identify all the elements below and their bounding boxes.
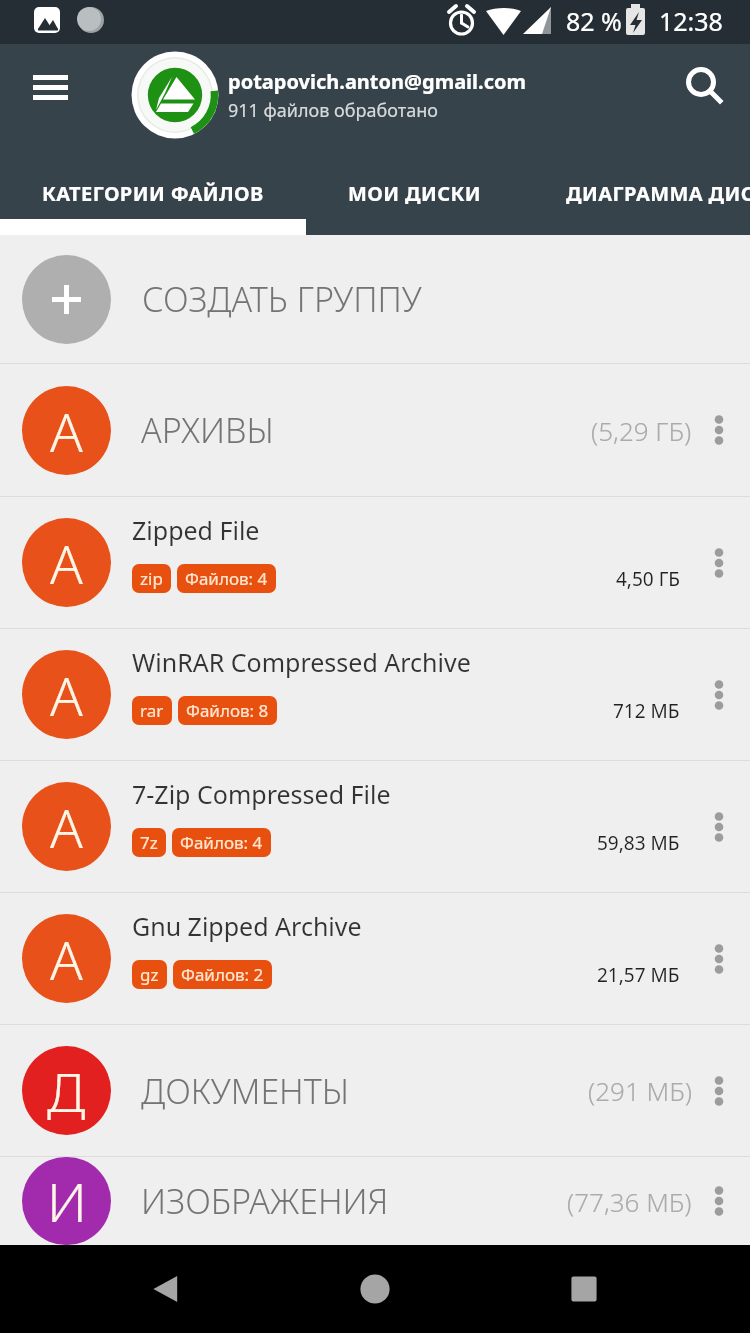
button[interactable]: Account avatar xyxy=(131,51,219,139)
staticText: WinRAR Compressed Archive xyxy=(132,645,471,679)
button[interactable]: More options xyxy=(706,937,732,981)
staticText: А xyxy=(50,658,83,732)
staticText: 59,83 МБ xyxy=(597,830,680,856)
staticText: А xyxy=(50,394,83,468)
button[interactable]: А xyxy=(0,629,750,760)
staticText: 82 % xyxy=(566,4,622,38)
button[interactable]: Open navigation drawer xyxy=(17,55,85,123)
staticText: Gnu Zipped Archive xyxy=(132,909,362,943)
staticText: А xyxy=(50,922,83,996)
staticText: И xyxy=(47,1164,87,1238)
staticText: Zipped File xyxy=(132,513,260,547)
staticText: 911 файлов обработано xyxy=(228,98,438,123)
button[interactable]: More options xyxy=(706,408,732,452)
staticText: Файлов: 4 xyxy=(180,831,263,854)
button[interactable]: А xyxy=(0,893,750,1024)
button[interactable]: А xyxy=(0,497,750,628)
staticText: Д xyxy=(47,1054,86,1128)
staticText: 712 МБ xyxy=(613,698,680,724)
staticText: (291 МБ) xyxy=(588,1073,692,1108)
button[interactable]: А xyxy=(0,761,750,892)
button[interactable]: Back xyxy=(125,1247,209,1331)
button[interactable]: More options xyxy=(706,1069,732,1113)
staticText: 21,57 МБ xyxy=(597,962,680,988)
button[interactable]: СОЗДАТЬ ГРУППУ xyxy=(0,235,750,363)
staticText: А xyxy=(50,526,83,600)
button[interactable]: More options xyxy=(706,805,732,849)
staticText: (77,36 МБ) xyxy=(567,1184,692,1219)
staticText: 7-Zip Compressed File xyxy=(132,777,391,811)
staticText: Файлов: 4 xyxy=(185,567,268,590)
staticText: potapovich.anton@gmail.com xyxy=(228,68,526,95)
staticText: А xyxy=(50,790,83,864)
button[interactable]: Recent apps xyxy=(542,1247,626,1331)
button[interactable]: More options xyxy=(706,1179,732,1223)
staticText: 12:38 xyxy=(659,4,723,38)
button[interactable]: Search xyxy=(668,57,734,123)
button[interactable]: Д xyxy=(0,1025,750,1156)
staticText: 7z xyxy=(140,831,158,854)
staticText: 4,50 ГБ xyxy=(616,566,680,592)
staticText: ИЗОБРАЖЕНИЯ xyxy=(141,1178,389,1224)
staticText: Файлов: 2 xyxy=(181,963,264,986)
button[interactable]: ДИАГРАММА ДИСКА xyxy=(522,165,750,235)
staticText: rar xyxy=(140,699,164,722)
staticText: КАТЕГОРИИ ФАЙЛОВ xyxy=(42,180,264,207)
staticText: АРХИВЫ xyxy=(141,407,274,453)
staticText: МОИ ДИСКИ xyxy=(348,180,481,207)
staticText: zip xyxy=(140,567,163,590)
button[interactable]: МОИ ДИСКИ xyxy=(306,165,522,235)
staticText: (5,29 ГБ) xyxy=(591,413,692,448)
button[interactable]: More options xyxy=(706,673,732,717)
staticText: gz xyxy=(140,963,159,986)
button[interactable]: КАТЕГОРИИ ФАЙЛОВ xyxy=(0,165,306,235)
button[interactable]: И xyxy=(0,1157,750,1245)
staticText: ДИАГРАММА ДИСКА xyxy=(566,180,750,207)
button[interactable]: Home xyxy=(333,1247,417,1331)
button[interactable]: More options xyxy=(706,541,732,585)
staticText: Файлов: 8 xyxy=(186,699,269,722)
staticText: СОЗДАТЬ ГРУППУ xyxy=(142,276,422,322)
staticText: ДОКУМЕНТЫ xyxy=(141,1068,349,1114)
button[interactable]: А xyxy=(0,364,750,496)
